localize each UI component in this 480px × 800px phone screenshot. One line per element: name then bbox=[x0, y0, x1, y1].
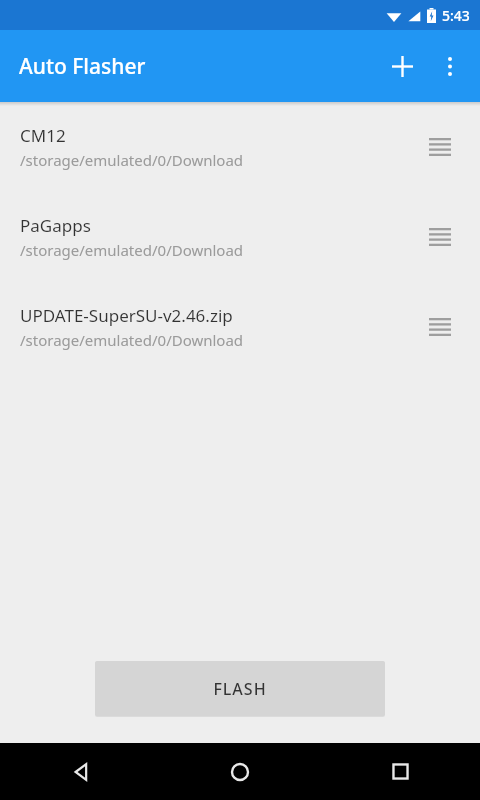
button[interactable]: Recent apps bbox=[320, 743, 480, 800]
staticText: /storage/emulated/0/Download bbox=[20, 330, 244, 350]
button[interactable]: Reorder bbox=[420, 217, 460, 257]
staticText: CM12 bbox=[20, 124, 66, 147]
staticText: UPDATE-SuperSU-v2.46.zip bbox=[20, 304, 233, 327]
staticText: /storage/emulated/0/Download bbox=[20, 150, 244, 170]
button[interactable]: Reorder bbox=[420, 307, 460, 347]
button[interactable]: Home bbox=[160, 743, 320, 800]
button[interactable]: CM12 bbox=[0, 102, 480, 192]
button[interactable]: FLASH bbox=[95, 661, 385, 716]
staticText: Auto Flasher bbox=[19, 52, 146, 81]
staticText: /storage/emulated/0/Download bbox=[20, 240, 244, 260]
staticText: 5:43 bbox=[442, 6, 470, 25]
button[interactable]: UPDATE-SuperSU-v2.46.zip bbox=[0, 282, 480, 372]
staticText: PaGapps bbox=[20, 214, 91, 237]
button[interactable]: PaGapps bbox=[0, 192, 480, 282]
staticText: FLASH bbox=[213, 678, 267, 700]
button[interactable]: More options bbox=[426, 42, 474, 90]
button[interactable]: Back bbox=[0, 743, 160, 800]
button[interactable]: Add bbox=[378, 42, 426, 90]
button[interactable]: Reorder bbox=[420, 127, 460, 167]
